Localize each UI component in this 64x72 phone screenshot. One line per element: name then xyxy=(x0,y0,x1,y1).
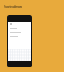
staticText: Favorite addresses xyxy=(4,5,22,9)
